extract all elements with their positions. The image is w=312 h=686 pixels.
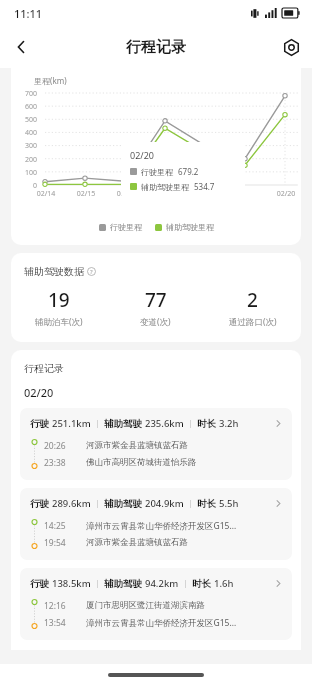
staticText: 通过路口(次) [229, 316, 277, 328]
staticText: 02/14 [34, 189, 58, 199]
staticText: 100 [13, 168, 37, 178]
staticText: 19 [48, 287, 70, 313]
staticText: 14:25 [44, 520, 78, 532]
staticText: 251.1km [52, 417, 91, 430]
staticText: 138.5km [52, 577, 91, 590]
staticText: 佛山市高明区荷城街道怡乐路 [86, 457, 197, 468]
staticText: 1.6h [214, 577, 234, 590]
staticText: 02/20 [274, 189, 298, 199]
staticText: 里程(km) [34, 75, 67, 86]
staticText: ? [90, 268, 93, 276]
staticText: 辅助驾驶 [104, 577, 145, 590]
staticText: 漳州市云霄县常山华侨经济开发区G15… [86, 617, 237, 629]
staticText: 行程记录 [126, 38, 186, 57]
staticText: 时长 [197, 417, 219, 430]
staticText: 534.7 [194, 181, 215, 192]
staticText: 02/20 [130, 149, 154, 161]
staticText: 河源市紫金县蓝塘镇蓝石路 [86, 537, 188, 548]
staticText: 辅助驾驶数据 [24, 265, 84, 278]
button[interactable]: Back [0, 26, 42, 68]
staticText: 辅助驾驶里程 [141, 182, 189, 192]
staticText: 20:26 [44, 440, 78, 452]
staticText: 77 [145, 287, 167, 313]
staticText: 400 [13, 128, 37, 138]
staticText: 204.9km [145, 497, 184, 510]
button[interactable]: 行驶 [20, 568, 292, 640]
staticText: 行程记录 [24, 362, 64, 375]
staticText: 600 [13, 102, 37, 112]
staticText: 500 [13, 115, 37, 125]
staticText: 700 [13, 89, 37, 99]
staticText: 11:11 [14, 6, 43, 21]
staticText: 200 [13, 155, 37, 165]
staticText: 行驶 [30, 497, 52, 510]
button[interactable]: Info [87, 267, 96, 276]
staticText: 河源市紫金县蓝塘镇蓝石路 [86, 440, 188, 451]
staticText: 679.2 [178, 166, 199, 177]
staticText: 289.6km [52, 497, 91, 510]
staticText: 行驶里程 [141, 167, 173, 177]
staticText: 13:54 [44, 617, 78, 629]
staticText: 时长 [192, 577, 214, 590]
staticText: 0 [13, 181, 37, 191]
staticText: 辅助驾驶 [104, 497, 145, 510]
staticText: 23:38 [44, 457, 78, 469]
staticText: 时长 [197, 497, 219, 510]
staticText: 5.5h [219, 497, 239, 510]
button[interactable]: 行驶 [20, 408, 292, 480]
staticText: 行驶 [30, 417, 52, 430]
staticText: 变道(次) [140, 316, 171, 328]
staticText: 2 [247, 287, 258, 313]
staticText: 辅助驾驶里程 [166, 222, 214, 232]
staticText: 3.2h [219, 417, 239, 430]
staticText: 300 [13, 141, 37, 151]
staticText: 辅助驾驶 [104, 417, 145, 430]
staticText: 12:16 [44, 600, 78, 612]
staticText: 02/20 [24, 385, 54, 400]
staticText: 辅助泊车(次) [35, 316, 83, 328]
button[interactable]: 行驶 [20, 488, 292, 560]
staticText: 行驶里程 [110, 222, 142, 232]
staticText: 行驶 [30, 577, 52, 590]
staticText: 19:54 [44, 537, 78, 549]
staticText: 漳州市云霄县常山华侨经济开发区G15… [86, 520, 237, 532]
staticText: 235.6km [145, 417, 184, 430]
button[interactable]: Settings [270, 26, 312, 68]
staticText: 94.2km [145, 577, 179, 590]
staticText: 厦门市思明区鹭江街道湖滨南路 [86, 600, 205, 611]
staticText: 02/16 [114, 189, 138, 199]
staticText: 02/15 [74, 189, 98, 199]
